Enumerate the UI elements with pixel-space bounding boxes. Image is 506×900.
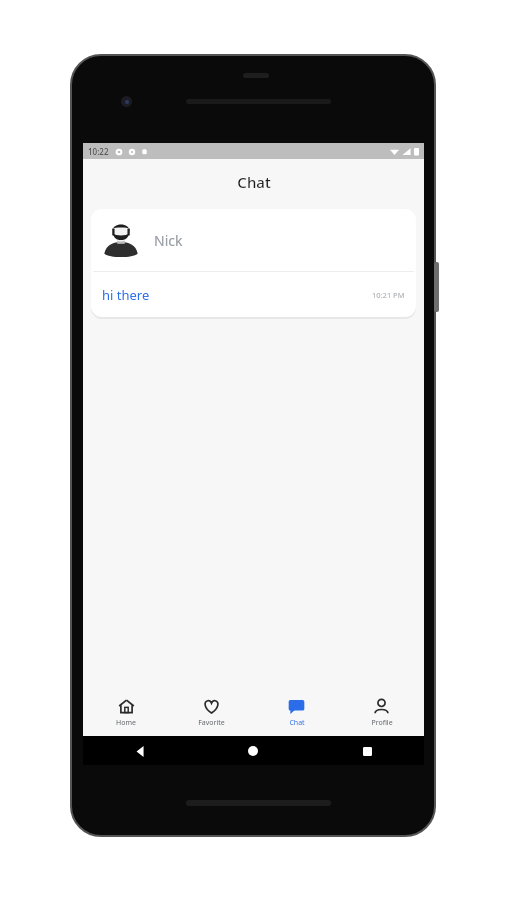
staticText: Home	[116, 718, 136, 728]
button[interactable]: Nick	[91, 209, 416, 317]
staticText: hi there	[102, 286, 150, 304]
staticText: 10:21 PM	[372, 290, 405, 300]
button[interactable]: Profile	[339, 690, 424, 736]
staticText: Chat	[237, 172, 271, 192]
button[interactable]: Home	[83, 690, 169, 736]
button[interactable]: Home	[241, 739, 265, 763]
staticText: 10:22	[88, 146, 109, 157]
button[interactable]: Recent apps	[355, 739, 379, 763]
button[interactable]: Back	[128, 739, 152, 763]
staticText: Profile	[371, 718, 393, 728]
staticText: Favorite	[198, 718, 225, 728]
button[interactable]: Chat	[254, 690, 339, 736]
staticText: Chat	[289, 718, 305, 728]
button[interactable]: Favorite	[169, 690, 254, 736]
staticText: Nick	[154, 231, 183, 250]
